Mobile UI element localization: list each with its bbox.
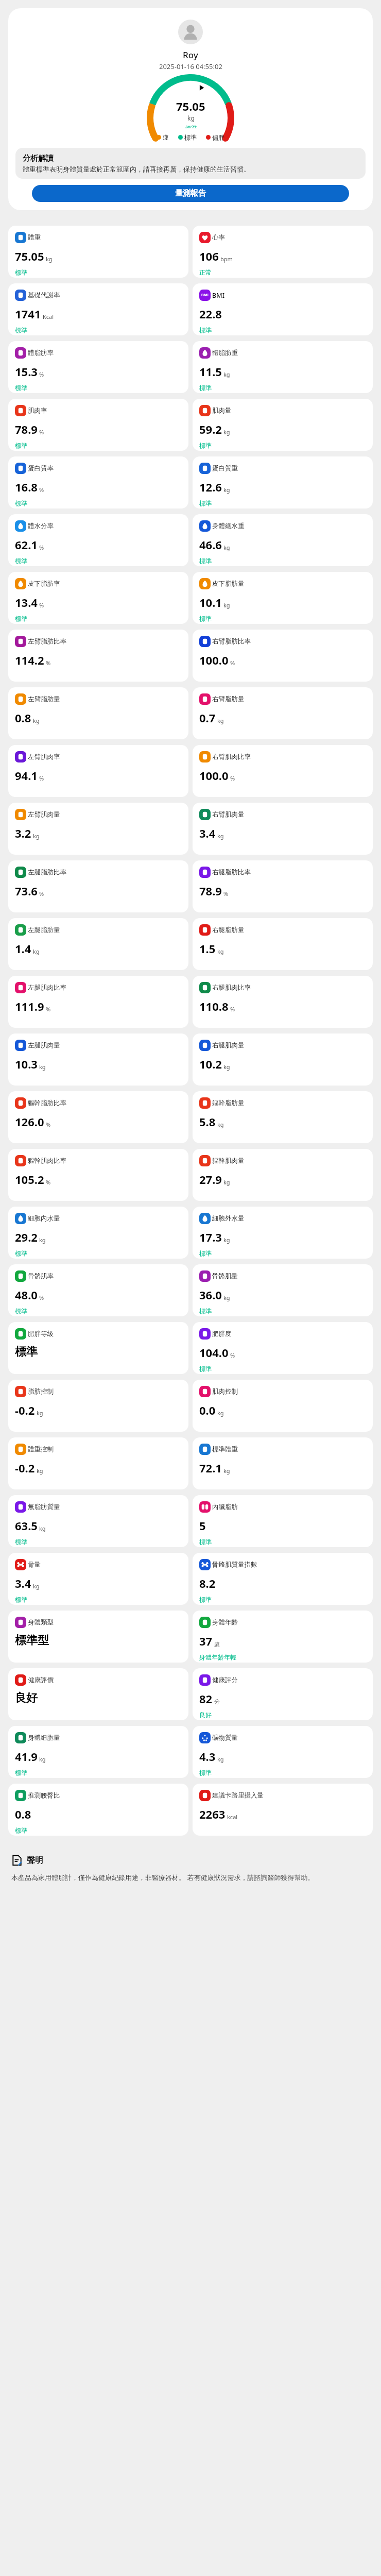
button[interactable]: 肥胖等級: [8, 1322, 188, 1374]
staticText: 骨骼肌質量指數: [212, 1561, 257, 1569]
staticText: kg: [33, 832, 40, 840]
staticText: 標準: [199, 1538, 212, 1546]
button[interactable]: 推測腰臀比: [8, 1784, 188, 1836]
button[interactable]: 身體總水重: [193, 514, 373, 566]
staticText: 105.2: [15, 1172, 44, 1187]
staticText: 細胞外水量: [212, 1214, 245, 1223]
staticText: 右臂肌肉比率: [212, 753, 251, 761]
staticText: 軀幹肌肉比率: [28, 1157, 66, 1165]
button[interactable]: 肌肉率: [8, 399, 188, 451]
button[interactable]: 左臂脂肪量: [8, 687, 188, 739]
staticText: kg: [223, 1467, 230, 1475]
button[interactable]: 健康評分: [193, 1668, 373, 1720]
button[interactable]: 右腿脂肪量: [193, 918, 373, 970]
button[interactable]: 身體細胞量: [8, 1726, 188, 1778]
button[interactable]: 建議卡路里攝入量: [193, 1784, 373, 1836]
staticText: 右腿脂肪比率: [212, 868, 251, 876]
button[interactable]: 體脂肪率: [8, 341, 188, 393]
staticText: 右腿肌肉比率: [212, 984, 251, 992]
button[interactable]: 骨骼肌量: [193, 1264, 373, 1316]
staticText: 體水分率: [28, 522, 54, 530]
button[interactable]: 骨骼肌質量指數: [193, 1553, 373, 1605]
button[interactable]: 皮下脂肪率: [8, 572, 188, 624]
staticText: 37: [199, 1633, 213, 1649]
button[interactable]: 右腿脂肪比率: [193, 860, 373, 912]
button[interactable]: 細胞內水量: [8, 1207, 188, 1259]
staticText: 基礎代謝率: [28, 291, 60, 299]
staticText: %: [39, 370, 44, 378]
staticText: 1741: [15, 306, 41, 321]
staticText: 肌肉控制: [212, 1387, 238, 1396]
button[interactable]: BMI: [193, 283, 373, 335]
button[interactable]: 左臂脂肪比率: [8, 630, 188, 682]
staticText: 126.0: [15, 1114, 44, 1129]
staticText: 8.2: [199, 1575, 216, 1591]
staticText: %: [230, 774, 235, 782]
button[interactable]: 骨骼肌率: [8, 1264, 188, 1316]
staticText: 皮下脂肪量: [212, 580, 245, 588]
button[interactable]: 肥胖度: [193, 1322, 373, 1374]
button[interactable]: 左腿脂肪量: [8, 918, 188, 970]
button[interactable]: 體重控制: [8, 1437, 188, 1489]
staticText: 110.8: [199, 998, 229, 1014]
button[interactable]: 細胞外水量: [193, 1207, 373, 1259]
staticText: kg: [217, 947, 224, 955]
staticText: 13.4: [15, 595, 38, 610]
staticText: 標準: [15, 615, 27, 622]
button[interactable]: 身體類型: [8, 1611, 188, 1663]
button[interactable]: 皮下脂肪量: [193, 572, 373, 624]
button[interactable]: 右臂肌肉比率: [193, 745, 373, 797]
button[interactable]: 左腿脂肪比率: [8, 860, 188, 912]
button[interactable]: 軀幹肌肉量: [193, 1149, 373, 1201]
button[interactable]: 左腿肌肉量: [8, 1033, 188, 1086]
button[interactable]: 標準體重: [193, 1437, 373, 1489]
button[interactable]: 無脂肪質量: [8, 1495, 188, 1547]
button[interactable]: 左臂肌肉率: [8, 745, 188, 797]
button[interactable]: 軀幹肌肉比率: [8, 1149, 188, 1201]
staticText: kg: [223, 1178, 230, 1186]
staticText: 標準: [15, 1826, 27, 1834]
staticText: 骨量: [28, 1561, 41, 1569]
button[interactable]: 肌肉控制: [193, 1380, 373, 1432]
button[interactable]: 心率: [193, 226, 373, 278]
button[interactable]: 右腿肌肉量: [193, 1033, 373, 1086]
button[interactable]: 礦物質量: [193, 1726, 373, 1778]
button[interactable]: 健康評價: [8, 1668, 188, 1720]
staticText: %: [39, 428, 44, 436]
staticText: 12.6: [199, 479, 222, 495]
staticText: %: [39, 544, 44, 551]
button[interactable]: 內臟脂肪: [193, 1495, 373, 1547]
button[interactable]: 脂肪控制: [8, 1380, 188, 1432]
button[interactable]: 骨量: [8, 1553, 188, 1605]
staticText: 11.5: [199, 364, 222, 379]
staticText: 3.4: [199, 825, 216, 841]
staticText: %: [46, 1005, 51, 1013]
button[interactable]: 右臂脂肪量: [193, 687, 373, 739]
button[interactable]: 基礎代謝率: [8, 283, 188, 335]
button[interactable]: 肌肉量: [193, 399, 373, 451]
button[interactable]: 量測報告: [32, 185, 349, 202]
button[interactable]: 蛋白質率: [8, 456, 188, 509]
button[interactable]: 體脂肪重: [193, 341, 373, 393]
button[interactable]: 蛋白質重: [193, 456, 373, 509]
staticText: kg: [223, 486, 230, 494]
button[interactable]: 左腿肌肉比率: [8, 976, 188, 1028]
staticText: bpm: [220, 255, 233, 263]
button[interactable]: 左臂肌肉量: [8, 803, 188, 855]
staticText: 細胞內水量: [28, 1214, 60, 1223]
button[interactable]: 體重: [8, 226, 188, 278]
button[interactable]: 右臂脂肪比率: [193, 630, 373, 682]
button[interactable]: 軀幹脂肪量: [193, 1091, 373, 1143]
staticText: 聲明: [27, 1855, 43, 1866]
staticText: 10.2: [199, 1056, 222, 1072]
button[interactable]: 右臂肌肉量: [193, 803, 373, 855]
button[interactable]: 體水分率: [8, 514, 188, 566]
button[interactable]: 右腿肌肉比率: [193, 976, 373, 1028]
button[interactable]: 軀幹脂肪比率: [8, 1091, 188, 1143]
staticText: kg: [223, 1063, 230, 1071]
staticText: 標準: [15, 326, 27, 334]
button[interactable]: 身體年齡: [193, 1611, 373, 1663]
staticText: 標準: [15, 1596, 27, 1603]
staticText: 肥胖等級: [28, 1330, 54, 1338]
staticText: 78.9: [15, 421, 38, 437]
